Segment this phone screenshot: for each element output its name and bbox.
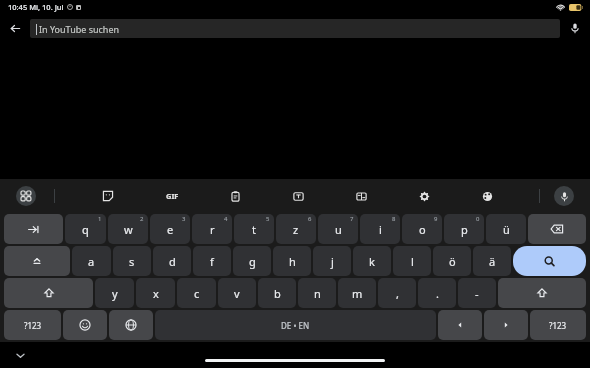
button[interactable]: a xyxy=(72,246,111,276)
button[interactable]: Emoji xyxy=(63,310,107,340)
staticText: - xyxy=(475,286,479,301)
button[interactable]: In YouTube suchen xyxy=(30,19,560,38)
button[interactable]: Sprache wechseln xyxy=(109,310,153,340)
staticText: h xyxy=(289,254,296,269)
staticText: ä xyxy=(489,254,496,269)
staticText: ü xyxy=(503,222,510,237)
staticText: o xyxy=(419,222,426,237)
button[interactable]: ö xyxy=(433,246,471,276)
button[interactable]: Texterkennung xyxy=(287,185,309,207)
button[interactable]: d xyxy=(153,246,191,276)
button[interactable]: y xyxy=(95,278,134,308)
button[interactable]: GIF xyxy=(161,185,183,207)
button[interactable]: Übersetzen xyxy=(350,185,372,207)
staticText: 6 xyxy=(308,215,312,223)
button[interactable]: t xyxy=(234,214,274,244)
button[interactable]: o xyxy=(402,214,442,244)
staticText: n xyxy=(314,286,321,301)
staticText: p xyxy=(461,222,468,237)
button[interactable]: e xyxy=(150,214,190,244)
button[interactable]: r xyxy=(192,214,232,244)
staticText: DE • EN xyxy=(281,320,310,331)
button[interactable]: Umschalt xyxy=(4,278,93,308)
button[interactable]: Feststelltaste xyxy=(4,246,70,276)
button[interactable]: g xyxy=(233,246,271,276)
button[interactable]: h xyxy=(273,246,311,276)
button[interactable]: q xyxy=(65,214,106,244)
staticText: s xyxy=(129,254,135,269)
staticText: w xyxy=(124,222,133,237)
button[interactable]: Zwischenablage xyxy=(224,185,246,207)
staticText: k xyxy=(369,254,375,269)
staticText: r xyxy=(210,222,215,237)
button[interactable]: Sticker xyxy=(97,185,119,207)
button[interactable]: i xyxy=(360,214,400,244)
staticText: m xyxy=(352,286,363,301)
staticText: 3 xyxy=(182,215,186,223)
staticText: z xyxy=(293,222,299,237)
button[interactable]: ?123 xyxy=(530,310,586,340)
staticText: 5 xyxy=(266,215,270,223)
button[interactable]: Zurück xyxy=(0,14,30,42)
staticText: x xyxy=(153,286,159,301)
staticText: f xyxy=(210,254,214,269)
staticText: GIF xyxy=(166,191,179,201)
staticText: ?123 xyxy=(24,320,42,331)
button[interactable]: k xyxy=(353,246,391,276)
button[interactable]: Umschalt xyxy=(498,278,586,308)
button[interactable]: b xyxy=(258,278,296,308)
staticText: ?123 xyxy=(549,320,567,331)
button[interactable]: . xyxy=(418,278,456,308)
staticText: 8 xyxy=(392,215,396,223)
button[interactable]: u xyxy=(318,214,358,244)
button[interactable]: Tastatur-Apps xyxy=(16,186,36,206)
button[interactable]: Tab xyxy=(4,214,63,244)
button[interactable]: w xyxy=(108,214,148,244)
button[interactable]: Cursor rechts xyxy=(484,310,528,340)
button[interactable]: n xyxy=(298,278,336,308)
button[interactable]: c xyxy=(177,278,216,308)
button[interactable]: m xyxy=(338,278,376,308)
button[interactable]: - xyxy=(458,278,496,308)
button[interactable]: Tastatur schließen xyxy=(12,347,28,363)
button[interactable]: v xyxy=(218,278,256,308)
staticText: 10:45 Mi, 10. Jul xyxy=(8,2,64,12)
button[interactable]: Suchen xyxy=(513,246,586,276)
staticText: , xyxy=(396,286,399,301)
staticText: 1 xyxy=(98,215,102,223)
button[interactable]: , xyxy=(378,278,416,308)
button[interactable]: Einstellungen xyxy=(413,185,435,207)
staticText: ö xyxy=(449,254,456,269)
button[interactable]: ä xyxy=(473,246,511,276)
staticText: d xyxy=(169,254,176,269)
staticText: q xyxy=(82,222,89,237)
staticText: 7 xyxy=(350,215,354,223)
staticText: 9 xyxy=(434,215,438,223)
staticText: c xyxy=(194,286,200,301)
staticText: . xyxy=(436,286,439,301)
button[interactable]: l xyxy=(393,246,431,276)
button[interactable]: p xyxy=(444,214,484,244)
button[interactable]: ?123 xyxy=(4,310,61,340)
staticText: a xyxy=(88,254,95,269)
staticText: g xyxy=(249,254,256,269)
button[interactable]: Löschen xyxy=(528,214,586,244)
button[interactable]: Spracheingabe xyxy=(554,186,574,206)
button[interactable]: Spracheingabe xyxy=(560,14,590,42)
button[interactable]: s xyxy=(113,246,151,276)
button[interactable]: f xyxy=(193,246,231,276)
staticText: v xyxy=(234,286,240,301)
button[interactable]: j xyxy=(313,246,351,276)
button[interactable]: z xyxy=(276,214,316,244)
staticText: t xyxy=(252,222,256,237)
staticText: e xyxy=(167,222,174,237)
button[interactable]: x xyxy=(136,278,175,308)
staticText: 2 xyxy=(140,215,144,223)
button[interactable]: Leertaste xyxy=(155,310,436,340)
staticText: l xyxy=(411,254,414,269)
staticText: i xyxy=(379,222,382,237)
button[interactable]: Cursor links xyxy=(438,310,482,340)
staticText: b xyxy=(274,286,281,301)
button[interactable]: ü xyxy=(486,214,526,244)
button[interactable]: Design xyxy=(476,185,498,207)
